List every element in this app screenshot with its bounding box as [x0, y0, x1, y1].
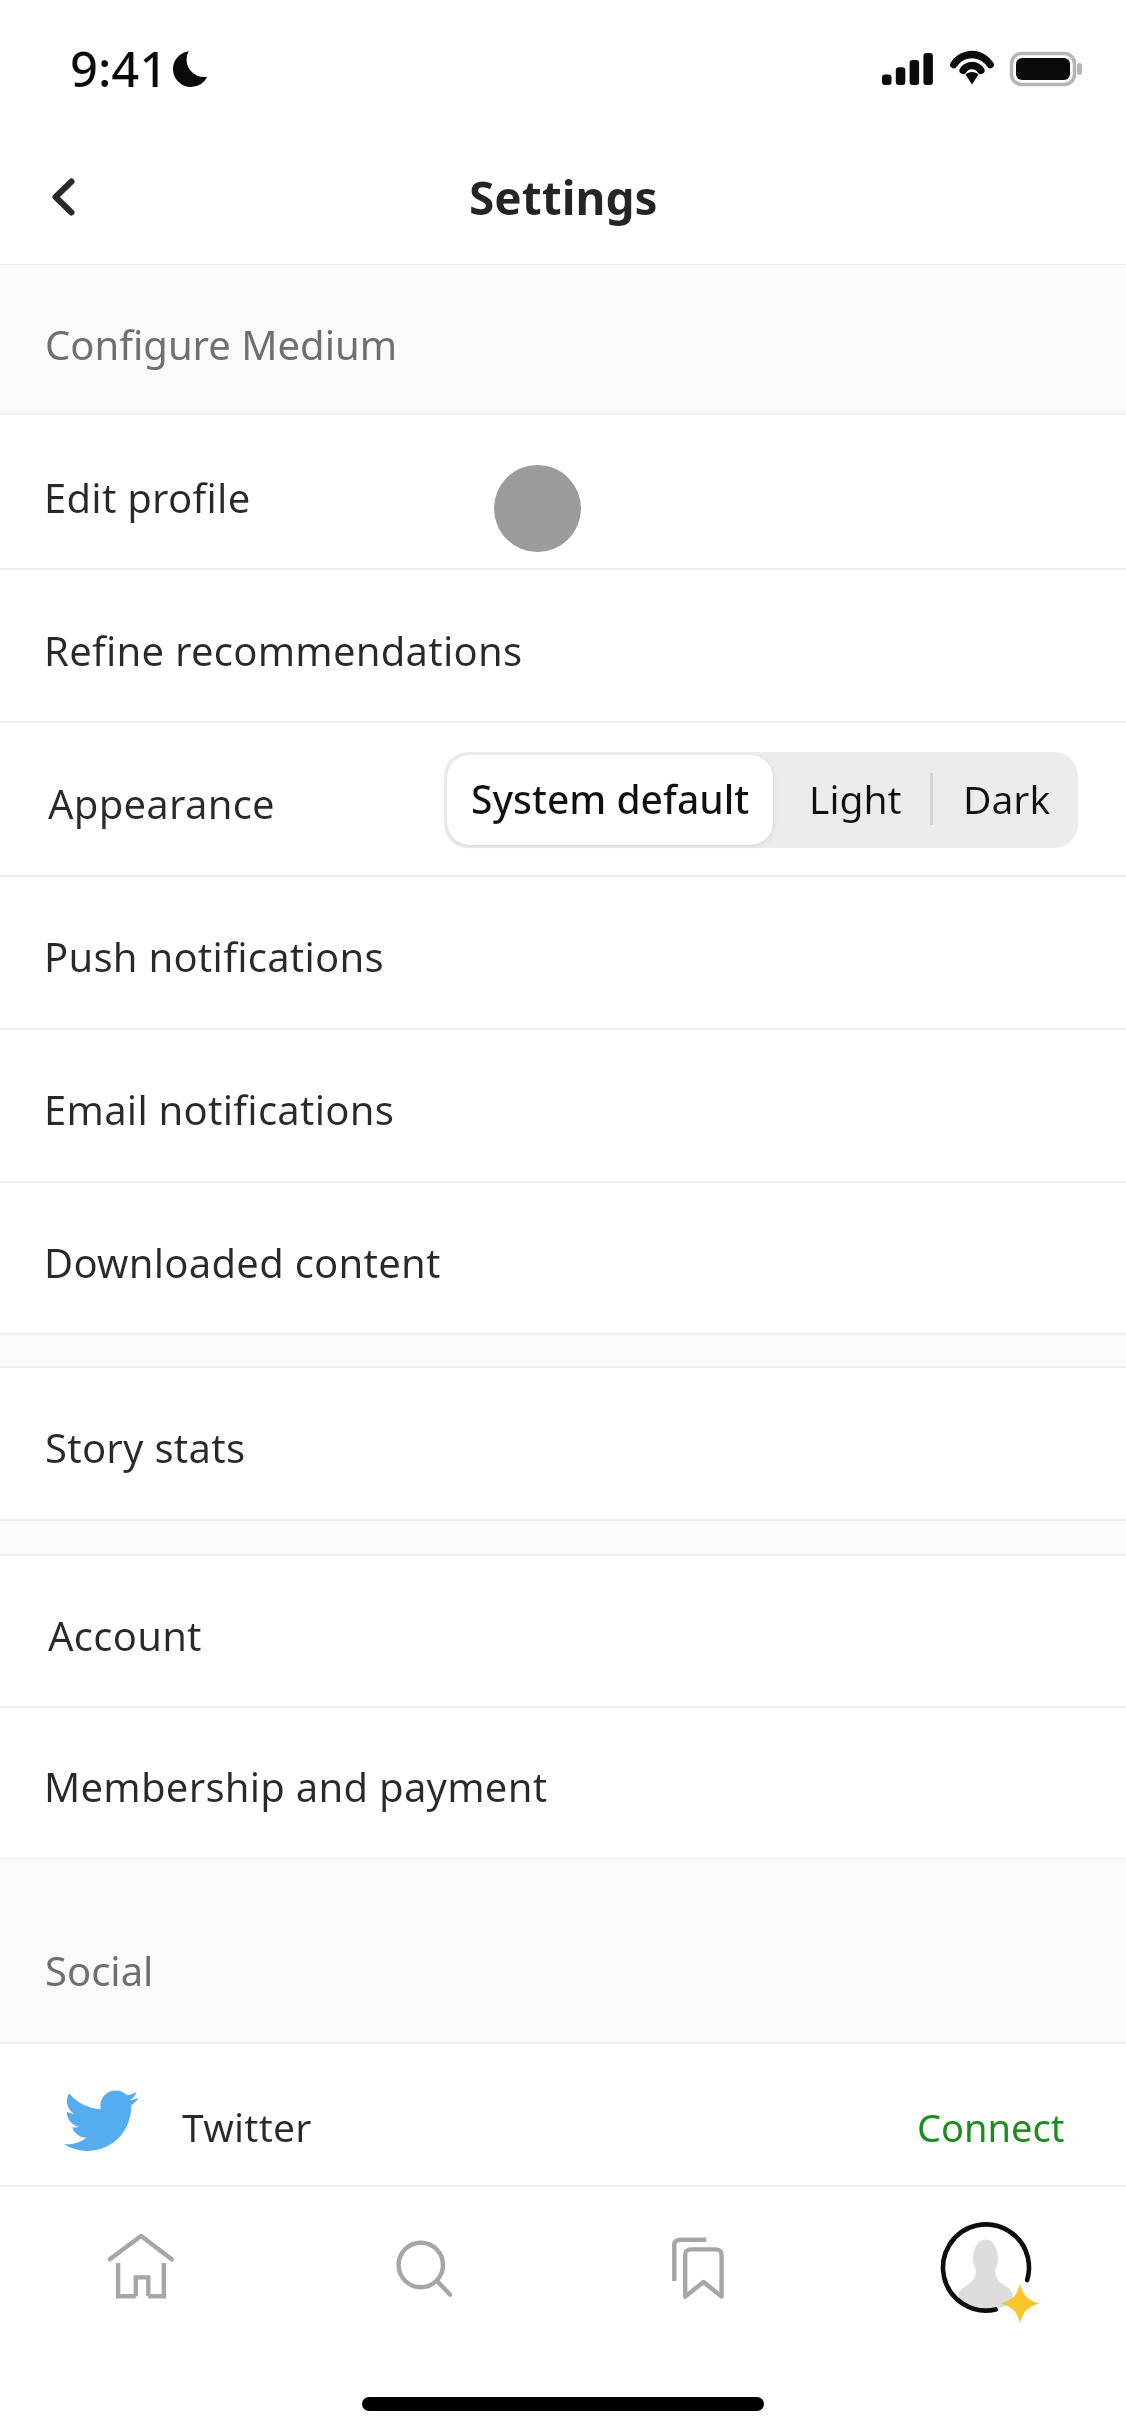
staticText: Edit profile: [44, 470, 251, 524]
staticText: Story stats: [45, 1420, 246, 1474]
staticText: Downloaded content: [44, 1235, 441, 1289]
button[interactable]: Push notifications: [0, 877, 1126, 1028]
button[interactable]: Downloaded content: [0, 1183, 1126, 1333]
button[interactable]: Story stats: [0, 1368, 1126, 1519]
staticText: Refine recommendations: [44, 623, 523, 677]
button[interactable]: Membership and payment: [0, 1708, 1126, 1858]
staticText: Membership and payment: [44, 1759, 548, 1813]
button[interactable]: Dark: [936, 752, 1078, 848]
staticText: 9:41: [70, 35, 168, 102]
button[interactable]: Back: [24, 157, 106, 237]
staticText: Light: [809, 772, 902, 825]
staticText: Connect: [917, 2101, 1065, 2153]
button[interactable]: Home: [30, 2195, 252, 2345]
button[interactable]: Profile: [875, 2195, 1097, 2345]
button[interactable]: Search: [310, 2195, 532, 2345]
button[interactable]: Bookmarks: [592, 2195, 814, 2345]
button[interactable]: Email notifications: [0, 1030, 1126, 1181]
button[interactable]: Light: [779, 752, 931, 848]
button[interactable]: Account: [0, 1556, 1126, 1706]
button[interactable]: System default: [447, 755, 773, 845]
staticText: Appearance: [48, 776, 275, 830]
button[interactable]: Twitter: [0, 2044, 1126, 2185]
staticText: System default: [471, 772, 750, 825]
staticText: Account: [48, 1608, 202, 1662]
staticText: Twitter: [182, 2100, 312, 2153]
staticText: Push notifications: [44, 929, 384, 983]
button[interactable]: Appearance: [0, 723, 1126, 875]
staticText: Settings: [469, 166, 658, 229]
button[interactable]: Refine recommendations: [0, 570, 1126, 721]
staticText: Dark: [963, 772, 1051, 825]
staticText: Social: [45, 1943, 154, 1997]
staticText: Email notifications: [44, 1082, 395, 1136]
staticText: Configure Medium: [45, 317, 398, 371]
button[interactable]: Edit profile: [0, 415, 1126, 568]
